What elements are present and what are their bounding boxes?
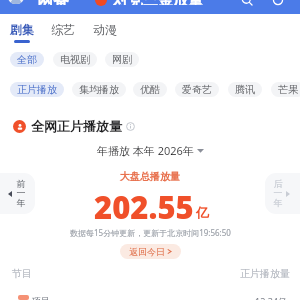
button[interactable]: 爱奇艺 [175, 82, 219, 97]
staticText: 对竞三金放量 [113, 0, 203, 5]
staticText: 全网正片播放量 [31, 118, 122, 134]
staticText: 网备 [37, 0, 69, 5]
button[interactable]: Refresh [272, 0, 284, 6]
button[interactable]: 正片播放 [10, 82, 64, 97]
button[interactable]: Search [241, 0, 253, 6]
button[interactable]: 优酷 [133, 82, 167, 97]
button[interactable]: 芒果 [271, 82, 300, 97]
staticText: 数据每15分钟更新，更新于北京时间19:56:50 [70, 227, 231, 238]
button[interactable]: 动漫 [89, 22, 121, 43]
button[interactable]: 全部 [10, 52, 44, 67]
button[interactable]: Previous year [0, 173, 35, 214]
staticText: 正片播放 [17, 83, 57, 96]
button[interactable]: Next year [265, 173, 300, 214]
staticText: 电视剧 [60, 53, 90, 66]
staticText: 动漫 [93, 22, 117, 37]
staticText: 大盘总播放量 [120, 170, 180, 183]
staticText: 腾讯 [235, 83, 255, 96]
staticText: 芒果 [278, 83, 298, 96]
staticText: 正片播放量 [240, 267, 290, 280]
staticText: 项目 [32, 295, 50, 300]
staticText: 节目 [12, 267, 32, 280]
staticText: 亿 [196, 204, 209, 220]
staticText: 前一年 [16, 178, 26, 209]
staticText: 爱奇艺 [182, 83, 212, 96]
button[interactable]: 集均播放 [72, 82, 126, 97]
button[interactable]: 腾讯 [228, 82, 262, 97]
staticText: 集均播放 [79, 83, 119, 96]
button[interactable]: 返回今日 [120, 244, 181, 259]
staticText: 综艺 [51, 22, 75, 37]
button[interactable]: 综艺 [47, 22, 79, 43]
staticText: 剧集 [10, 22, 34, 37]
staticText: 优酷 [140, 83, 160, 96]
staticText: 返回今日 [129, 246, 165, 257]
button[interactable]: 年播放 本年 2026年 [95, 143, 206, 158]
button[interactable]: 剧集 [6, 22, 38, 43]
staticText: 12.34亿 [255, 295, 288, 300]
staticText: 全部 [17, 53, 37, 66]
button[interactable]: 电视剧 [53, 52, 97, 67]
staticText: 后一年 [273, 178, 283, 209]
staticText: 网剧 [112, 53, 132, 66]
button[interactable]: Profile [8, 0, 24, 4]
staticText: 年播放 本年 2026年 [97, 143, 194, 158]
staticText: 202.55 [94, 186, 194, 228]
button[interactable]: 网剧 [105, 52, 139, 67]
